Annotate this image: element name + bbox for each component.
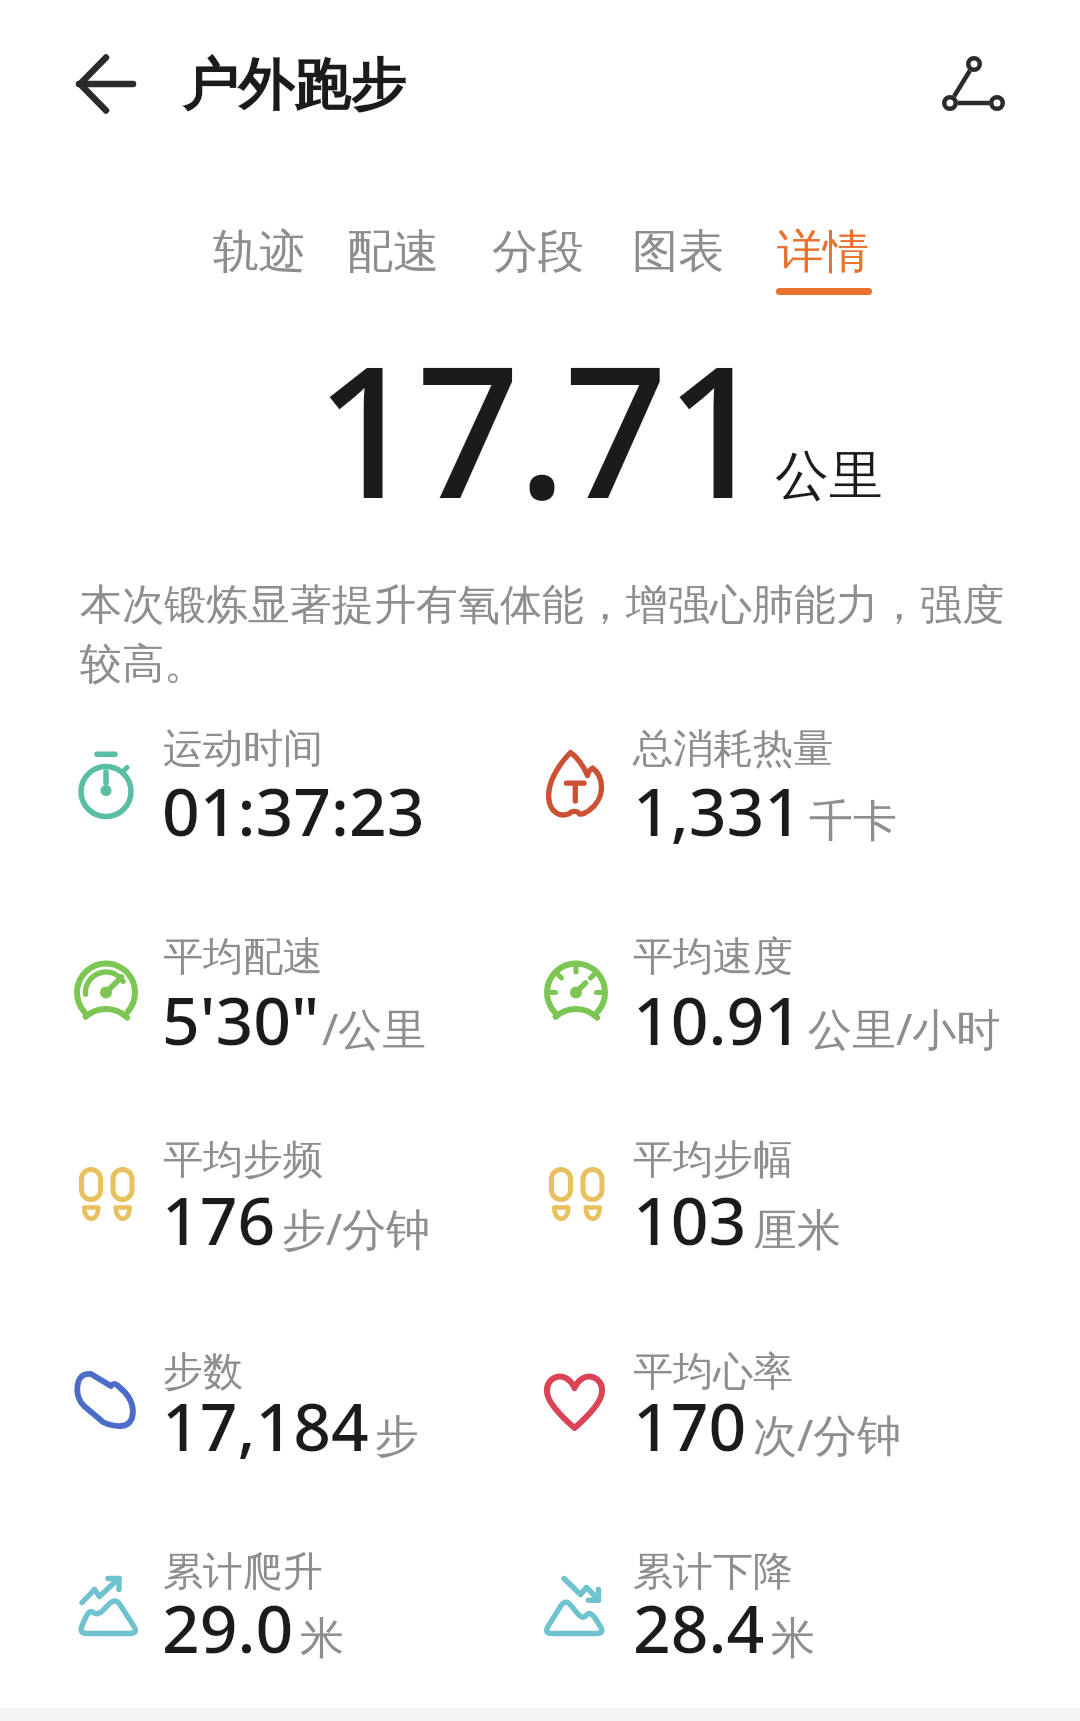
staticText: 分段 <box>492 223 584 281</box>
staticText: 平均步幅 <box>633 1134 793 1184</box>
staticText: 步/分钟 <box>282 1198 431 1258</box>
staticText: 1,331 <box>633 765 803 855</box>
staticText: 累计爬升 <box>163 1546 323 1596</box>
staticText: 详情 <box>777 223 869 281</box>
staticText: 17,184 <box>162 1380 369 1470</box>
staticText: 公里 <box>775 442 883 510</box>
staticText: 户外跑步 <box>182 50 406 121</box>
button[interactable]: 图表 <box>632 223 724 281</box>
staticText: 平均步频 <box>163 1134 323 1184</box>
staticText: 步数 <box>163 1346 243 1396</box>
button[interactable]: 配速 <box>347 223 439 281</box>
staticText: 28.4 <box>633 1582 765 1672</box>
staticText: 176 <box>162 1174 276 1264</box>
button[interactable]: 轨迹 <box>213 223 305 281</box>
staticText: 千卡 <box>809 794 897 849</box>
staticText: /公里 <box>322 998 427 1058</box>
staticText: 运动时间 <box>163 723 323 773</box>
staticText: 29.0 <box>162 1582 294 1672</box>
staticText: 米 <box>300 1611 344 1666</box>
staticText: 本次锻炼显著提升有氧体能，增强心肺能力，强度 <box>80 579 1004 632</box>
staticText: 103 <box>633 1174 747 1264</box>
button[interactable] <box>925 40 1021 130</box>
staticText: 01:37:23 <box>162 765 425 855</box>
staticText: 配速 <box>347 223 439 281</box>
staticText: 17.71 <box>315 303 766 551</box>
staticText: 170 <box>633 1380 747 1470</box>
button[interactable]: 分段 <box>492 223 584 281</box>
staticText: 总消耗热量 <box>633 723 833 773</box>
staticText: 10.91 <box>633 974 802 1064</box>
staticText: 米 <box>771 1611 815 1666</box>
staticText: 厘米 <box>753 1203 841 1258</box>
button[interactable] <box>60 46 146 122</box>
staticText: 图表 <box>632 223 724 281</box>
button[interactable]: 详情 <box>777 223 869 281</box>
staticText: 平均速度 <box>633 931 793 981</box>
staticText: 平均心率 <box>633 1346 793 1396</box>
staticText: 5'30" <box>162 974 320 1064</box>
staticText: 步 <box>375 1409 419 1464</box>
staticText: 较高。 <box>80 638 206 691</box>
staticText: 平均配速 <box>163 931 323 981</box>
staticText: 次/分钟 <box>753 1404 902 1464</box>
staticText: 轨迹 <box>213 223 305 281</box>
staticText: 累计下降 <box>633 1546 793 1596</box>
staticText: 公里/小时 <box>808 998 1001 1058</box>
